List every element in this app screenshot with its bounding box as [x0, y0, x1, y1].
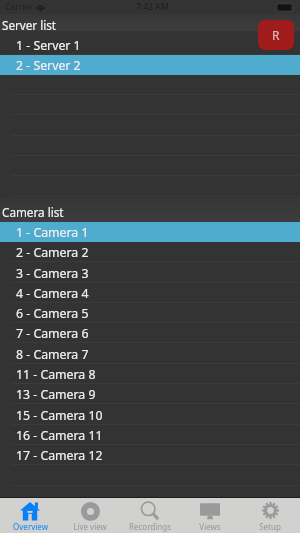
staticText: Carrier — [5, 1, 33, 13]
staticText: Live view — [73, 521, 107, 532]
button[interactable]: 2 - Server 2 — [0, 55, 300, 75]
button[interactable]: Views — [180, 498, 240, 533]
button[interactable]: 6 - Camera 5 — [0, 303, 300, 323]
staticText: Camera list — [2, 204, 64, 220]
staticText: 15 - Camera 10 — [16, 407, 103, 424]
button[interactable]: R — [258, 20, 294, 50]
button[interactable]: 8 - Camera 7 — [0, 344, 300, 364]
staticText: 1 - Camera 1 — [16, 224, 89, 241]
button[interactable]: Recordings — [120, 498, 180, 533]
staticText: Setup — [259, 521, 281, 532]
staticText: 16 - Camera 11 — [16, 427, 103, 444]
staticText: 11 - Camera 8 — [16, 366, 96, 383]
button[interactable]: 11 - Camera 8 — [0, 364, 300, 384]
button[interactable]: 4 - Camera 4 — [0, 283, 300, 303]
button[interactable]: 1 - Camera 1 — [0, 222, 300, 242]
button[interactable]: 13 - Camera 9 — [0, 384, 300, 404]
staticText: 4 - Camera 4 — [16, 285, 89, 302]
staticText: Server list — [2, 17, 57, 33]
button[interactable]: 2 - Camera 2 — [0, 242, 300, 262]
staticText: Views — [199, 521, 221, 532]
staticText: Overview — [13, 521, 48, 532]
staticText: 13 - Camera 9 — [16, 386, 96, 403]
staticText: 7 - Camera 6 — [16, 325, 89, 342]
button[interactable]: 16 - Camera 11 — [0, 425, 300, 445]
staticText: 2 - Server 2 — [16, 57, 81, 74]
button[interactable]: Live view — [60, 498, 120, 533]
button[interactable]: 3 - Camera 3 — [0, 263, 300, 283]
staticText: 1 - Server 1 — [16, 37, 81, 54]
staticText: 3 - Camera 3 — [16, 265, 89, 282]
staticText: 6 - Camera 5 — [16, 305, 89, 322]
button[interactable]: 7 - Camera 6 — [0, 323, 300, 343]
button[interactable]: 15 - Camera 10 — [0, 405, 300, 425]
staticText: R — [272, 27, 280, 43]
staticText: 7:42 AM — [136, 1, 169, 13]
button[interactable]: 1 - Server 1 — [0, 35, 300, 55]
button[interactable]: 17 - Camera 12 — [0, 445, 300, 465]
staticText: Recordings — [129, 521, 171, 532]
button[interactable]: Setup — [240, 498, 300, 533]
staticText: 2 - Camera 2 — [16, 244, 89, 261]
staticText: 8 - Camera 7 — [16, 346, 89, 363]
button[interactable]: Overview — [0, 498, 60, 533]
staticText: 17 - Camera 12 — [16, 447, 103, 464]
